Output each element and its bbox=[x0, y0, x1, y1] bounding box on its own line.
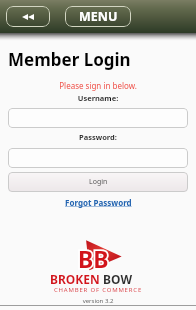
staticText: Member Login bbox=[8, 48, 131, 71]
staticText: Password: bbox=[0, 132, 196, 142]
button[interactable]: MENU bbox=[65, 6, 131, 27]
button[interactable] bbox=[8, 148, 188, 168]
staticText: BB bbox=[78, 243, 109, 274]
staticText: BB bbox=[78, 243, 109, 274]
button[interactable] bbox=[8, 108, 188, 128]
staticText: Username: bbox=[0, 93, 196, 103]
staticText: Login bbox=[89, 177, 108, 187]
staticText: version 3.2 bbox=[0, 297, 196, 305]
staticText: Please sign in below. bbox=[0, 80, 196, 91]
staticText: BOW bbox=[100, 271, 133, 287]
staticText: BROKEN bbox=[50, 271, 100, 287]
staticText: MENU bbox=[79, 8, 118, 25]
staticText: CHAMBER OF COMMERCE bbox=[0, 286, 196, 294]
button[interactable]: Login bbox=[8, 172, 188, 192]
button[interactable]: Back bbox=[6, 6, 50, 27]
button[interactable]: Forgot Password bbox=[65, 197, 132, 208]
staticText: Forgot Password bbox=[65, 197, 132, 208]
